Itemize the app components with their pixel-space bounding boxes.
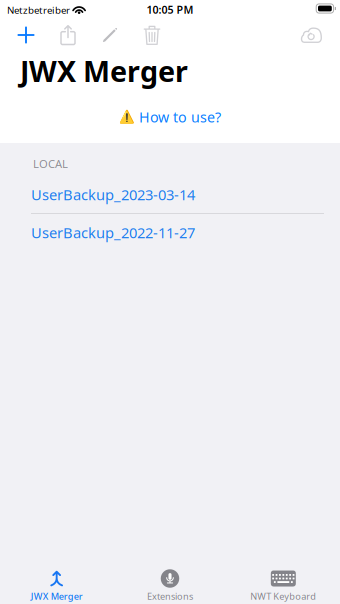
button[interactable]: UserBackup_2022-11-27 — [0, 214, 340, 251]
button[interactable]: Extensions — [113, 551, 227, 604]
staticText: 10:05 PM — [146, 2, 193, 17]
button[interactable]: UserBackup_2023-03-14 — [0, 176, 340, 213]
button[interactable]: Add — [5, 20, 47, 50]
staticText: UserBackup_2022-11-27 — [31, 222, 195, 242]
button[interactable]: Edit — [89, 20, 131, 50]
staticText: ⚠️ — [119, 110, 135, 124]
staticText: NWT Keyboard — [250, 590, 316, 602]
button[interactable]: JWX Merger — [0, 551, 113, 604]
staticText: JWX Merger — [20, 51, 188, 90]
button[interactable]: NWT Keyboard — [227, 551, 340, 604]
staticText: Netzbetreiber — [7, 3, 70, 17]
staticText: UserBackup_2023-03-14 — [31, 184, 195, 204]
button[interactable]: Delete — [131, 20, 173, 50]
button[interactable]: ⚠️ — [113, 105, 227, 129]
button[interactable]: Restore from iCloud — [290, 20, 332, 50]
staticText: How to use? — [139, 107, 221, 127]
button[interactable]: Share — [47, 20, 89, 50]
staticText: LOCAL — [33, 156, 68, 171]
staticText: JWX Merger — [31, 590, 83, 602]
staticText: Extensions — [147, 590, 193, 602]
